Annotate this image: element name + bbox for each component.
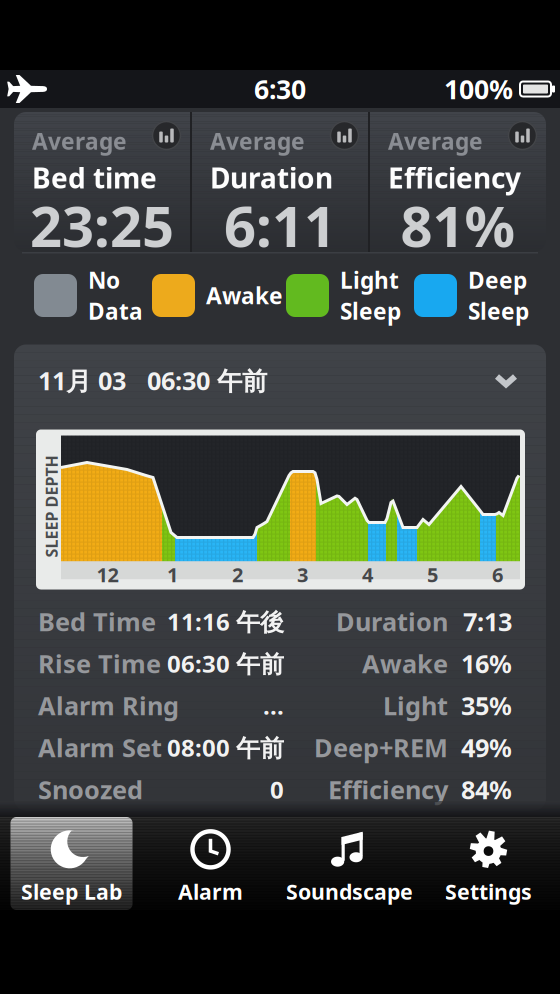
staticText: Awake [362,647,448,680]
staticText: Light [383,689,448,722]
staticText: 35% [461,689,512,722]
staticText: 0 [270,774,284,805]
staticText: 6:11 [224,188,336,262]
staticText: Soundscape [286,877,413,906]
staticText: Efficiency [388,159,521,196]
staticText: ... [263,690,284,721]
button[interactable]: Soundscape [280,817,419,910]
staticText: Settings [445,877,532,906]
staticText: Alarm Ring [38,689,179,722]
staticText: 06:30 午前 [167,648,284,679]
staticText: Awake [206,280,283,310]
staticText: 6:30 [254,71,306,107]
staticText: Bed time [32,159,157,196]
staticText: 12 [96,561,118,588]
staticText: 6 [492,561,503,588]
staticText: Efficiency [328,773,448,806]
staticText: 84% [461,773,512,806]
staticText: Average [32,126,127,156]
button[interactable]: Show statistics chart [152,121,181,150]
staticText: Alarm Set [38,731,162,764]
button[interactable]: Alarm [141,817,280,910]
staticText: Duration [210,159,333,196]
staticText: 7:13 [463,605,512,638]
staticText: 1 [167,561,178,588]
staticText: Sleep [340,296,401,326]
staticText: 49% [461,731,512,764]
button[interactable]: Settings [419,817,558,910]
staticText: Average [210,126,305,156]
staticText: Bed Time [38,605,156,638]
staticText: Alarm [178,877,243,906]
staticText: 11月 03 06:30 午前 [38,364,267,397]
staticText: Deep+REM [314,731,448,764]
button[interactable]: Collapse sleep record [14,344,546,408]
staticText: No [88,265,120,295]
staticText: 23:25 [30,188,174,262]
staticText: Duration [336,605,448,638]
staticText: 16% [461,647,512,680]
staticText: 3 [297,561,308,588]
staticText: 08:00 午前 [167,732,284,763]
staticText: Snoozed [38,773,143,806]
staticText: 11:16 午後 [167,606,284,637]
staticText: 81% [400,188,515,262]
button[interactable]: Sleep Lab [2,817,141,910]
staticText: 5 [427,561,438,588]
staticText: SLEEP DEPTH [0,496,102,517]
staticText: Rise Time [38,647,161,680]
staticText: 100% [444,71,513,107]
staticText: 2 [232,561,243,588]
staticText: 4 [362,561,373,588]
staticText: Light [340,265,399,295]
button[interactable]: Show statistics chart [330,121,359,150]
staticText: Average [388,126,483,156]
staticText: Sleep [468,296,529,326]
staticText: Data [88,296,143,326]
staticText: Deep [468,265,527,295]
button[interactable]: Show statistics chart [508,121,537,150]
staticText: Sleep Lab [21,877,122,906]
